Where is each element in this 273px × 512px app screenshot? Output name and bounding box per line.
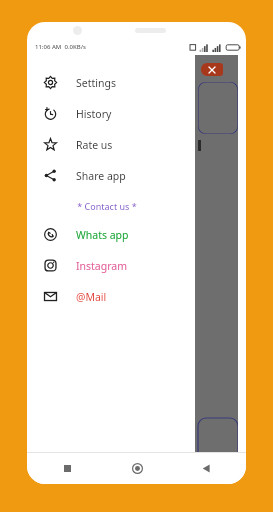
button[interactable]: @Mail	[27, 281, 187, 312]
button[interactable]: Recent apps	[55, 456, 79, 480]
button[interactable]: Whats app	[27, 219, 187, 250]
staticText: 11:06 AM 0.0KB/s	[35, 43, 86, 51]
staticText: Instagram	[76, 259, 128, 273]
staticText: Whats app	[76, 228, 129, 242]
staticText: Share app	[76, 169, 126, 183]
staticText: History	[76, 107, 112, 121]
staticText: @Mail	[76, 290, 107, 304]
button[interactable]: Back	[194, 456, 218, 480]
staticText: * Contact us *	[77, 200, 137, 212]
button[interactable]: History	[27, 98, 187, 129]
button[interactable]: Settings	[27, 67, 187, 98]
staticText: Rate us	[76, 138, 113, 152]
button[interactable]: Home	[125, 456, 149, 480]
button[interactable]: Close	[201, 63, 223, 76]
button[interactable]: Instagram	[27, 250, 187, 281]
button[interactable]: Share app	[27, 160, 187, 191]
button[interactable]: Rate us	[27, 129, 187, 160]
staticText: Settings	[76, 76, 116, 90]
